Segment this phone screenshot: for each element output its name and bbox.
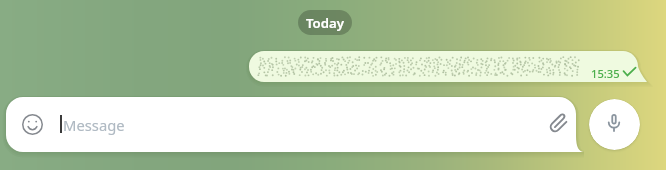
button[interactable]: Emoji (22, 114, 43, 135)
button[interactable]: Attach file (550, 114, 568, 132)
staticText: 15:35 (591, 66, 620, 81)
button[interactable]: Record voice message (589, 99, 640, 150)
staticText: Today (306, 14, 344, 32)
staticText: Message (63, 115, 125, 135)
button[interactable]: Today (298, 10, 352, 35)
